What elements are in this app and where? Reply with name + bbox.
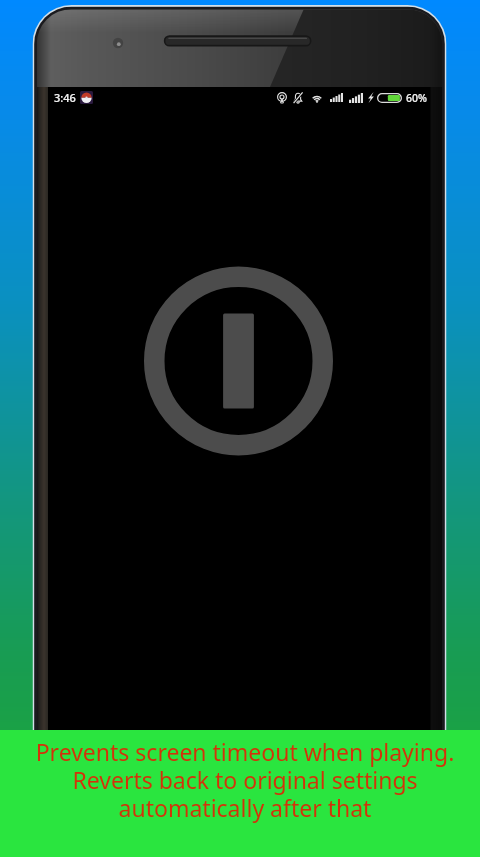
other: Mobile signal 1 — [330, 93, 343, 102]
other: Do not disturb — [277, 92, 287, 103]
other: Mobile signal 2 — [349, 93, 363, 103]
other: Notification — [80, 91, 93, 104]
other: Wi-Fi — [311, 92, 323, 104]
staticText: 60% — [406, 91, 427, 105]
other: Notifications silenced — [293, 92, 303, 104]
staticText: Prevents screen timeout when playing. Re… — [5, 736, 480, 824]
staticText: 3:46 — [54, 90, 76, 105]
other: Charging — [368, 92, 374, 103]
other: Battery 60 percent — [377, 93, 402, 103]
